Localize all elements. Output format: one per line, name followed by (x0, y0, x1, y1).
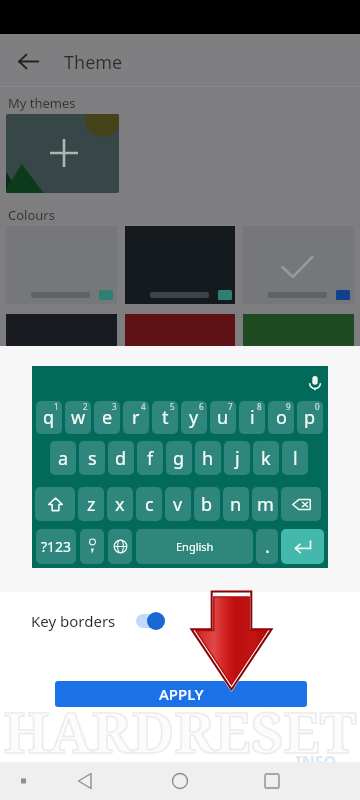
button[interactable] (243, 226, 354, 304)
staticText: i (250, 405, 255, 430)
staticText: My themes (8, 94, 76, 112)
staticText: . (265, 534, 270, 559)
staticText: m (257, 492, 274, 517)
button[interactable]: q (36, 401, 62, 434)
button[interactable]: u (210, 401, 236, 434)
button[interactable]: h (195, 441, 221, 475)
button[interactable]: t (152, 401, 178, 434)
button[interactable]: n (223, 487, 249, 521)
staticText: English (176, 539, 214, 554)
staticText: z (87, 492, 96, 517)
staticText: e (102, 405, 113, 430)
button[interactable]: l (282, 441, 308, 475)
staticText: c (145, 492, 154, 517)
button[interactable]: Backspace (281, 487, 321, 521)
button[interactable]: . (256, 529, 278, 564)
staticText: Key borders (31, 611, 116, 631)
button[interactable] (125, 226, 235, 304)
staticText: j (235, 446, 240, 471)
staticText: l (293, 446, 298, 471)
button[interactable]: m (252, 487, 278, 521)
button[interactable]: c (136, 487, 162, 521)
staticText: g (173, 446, 185, 471)
staticText: o (276, 405, 287, 430)
button[interactable]: v (165, 487, 191, 521)
button[interactable]: e (94, 401, 120, 434)
button[interactable]: k (253, 441, 279, 475)
staticText: r (132, 405, 140, 430)
button[interactable]: i (239, 401, 265, 434)
staticText: ?123 (41, 537, 72, 556)
staticText: d (115, 446, 127, 471)
button[interactable]: Add theme (6, 114, 119, 193)
staticText: h (202, 446, 214, 471)
button[interactable]: z (78, 487, 104, 521)
staticText: 8 (257, 401, 262, 412)
button[interactable]: Emoji (80, 529, 104, 564)
button[interactable]: Enter (281, 529, 324, 564)
button[interactable]: Back (10, 43, 46, 79)
staticText: p (304, 405, 316, 430)
button[interactable]: ?123 (36, 529, 76, 564)
button[interactable]: English (136, 529, 253, 564)
staticText: w (71, 405, 86, 430)
button[interactable]: a (50, 441, 76, 475)
staticText: a (58, 446, 69, 471)
button[interactable]: f (137, 441, 163, 475)
button[interactable]: x (107, 487, 133, 521)
button[interactable]: Voice input (301, 369, 329, 397)
button[interactable]: APPLY (55, 681, 307, 707)
staticText: HARDRESET (0, 693, 360, 769)
button[interactable]: p (297, 401, 323, 434)
staticText: v (173, 492, 183, 517)
staticText: 9 (286, 401, 291, 412)
staticText: n (230, 492, 242, 517)
staticText: 7 (228, 401, 233, 412)
staticText: Theme (64, 50, 123, 75)
button[interactable]: s (79, 441, 105, 475)
staticText: f (147, 446, 154, 471)
staticText: Colours (8, 206, 55, 224)
staticText: 1 (54, 401, 59, 412)
button[interactable]: o (268, 401, 294, 434)
button[interactable]: Key borders (0, 597, 360, 645)
staticText: 4 (141, 401, 146, 412)
staticText: 3 (112, 401, 117, 412)
button[interactable] (6, 226, 117, 304)
staticText: 6 (199, 401, 204, 412)
staticText: y (189, 405, 199, 430)
staticText: HARDRESET (0, 693, 360, 769)
button[interactable]: Language (108, 529, 132, 564)
staticText: .INFO (291, 751, 337, 773)
staticText: 0 (315, 401, 320, 412)
button[interactable]: y (181, 401, 207, 434)
staticText: s (88, 446, 97, 471)
staticText: t (162, 405, 169, 430)
staticText: 5 (170, 401, 175, 412)
button[interactable]: b (194, 487, 220, 521)
button[interactable]: g (166, 441, 192, 475)
button[interactable]: Shift (35, 487, 75, 521)
staticText: q (43, 405, 55, 430)
staticText: u (217, 405, 229, 430)
staticText: k (261, 446, 271, 471)
staticText: APPLY (159, 684, 204, 704)
staticText: x (115, 492, 125, 517)
button[interactable]: j (224, 441, 250, 475)
button[interactable]: d (108, 441, 134, 475)
button[interactable]: w (65, 401, 91, 434)
staticText: 2 (83, 401, 88, 412)
staticText: b (201, 492, 213, 517)
button[interactable]: r (123, 401, 149, 434)
